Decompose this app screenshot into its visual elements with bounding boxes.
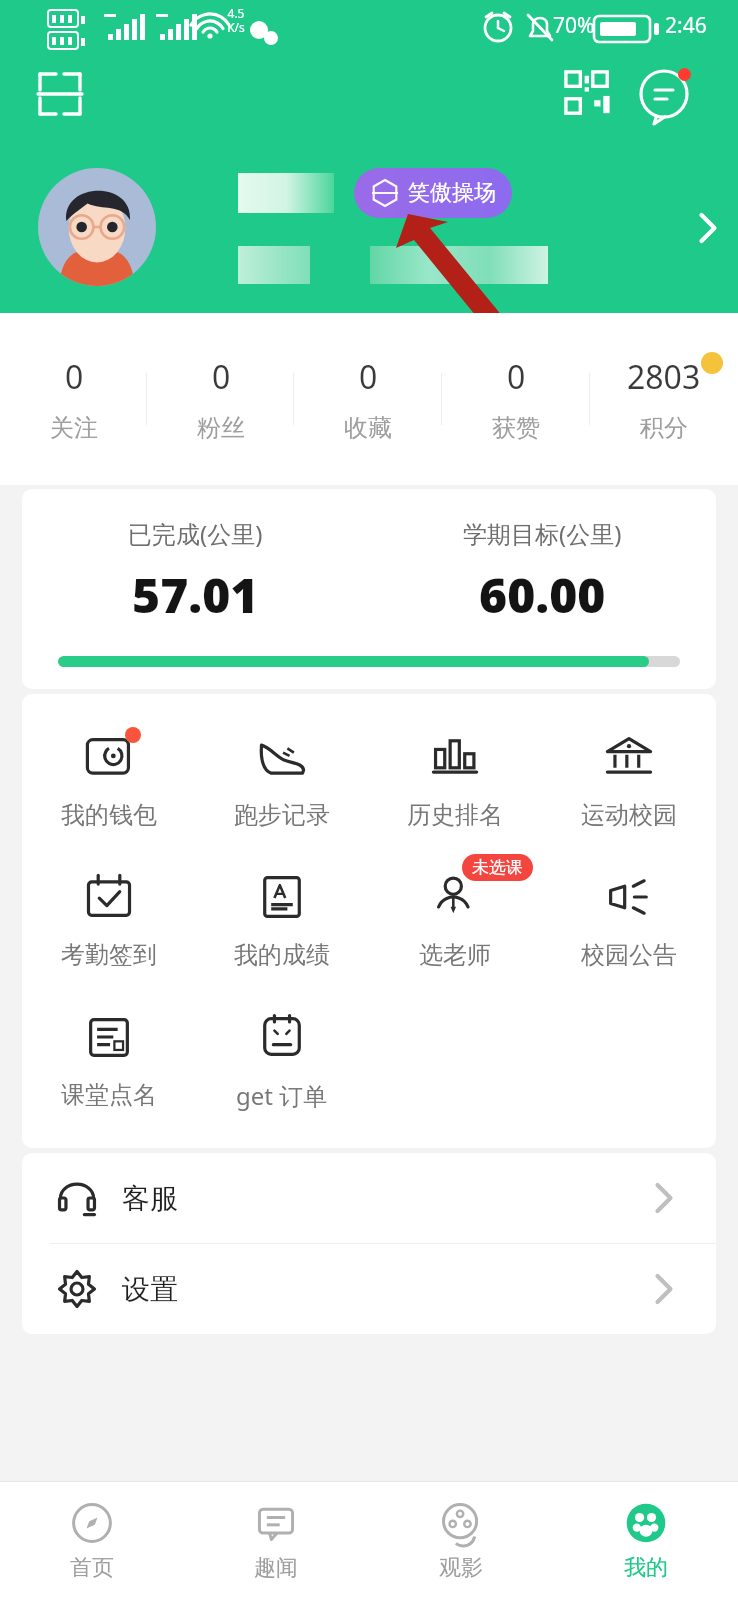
staticText: 57.01: [132, 562, 259, 627]
button[interactable]: 0: [0, 313, 147, 485]
staticText: 0: [507, 355, 526, 399]
staticText: 关注: [50, 413, 98, 443]
button[interactable]: 我的成绩: [195, 850, 368, 990]
button[interactable]: 0: [147, 313, 294, 485]
button[interactable]: get 订单: [195, 990, 368, 1130]
staticText: 观影: [439, 1554, 483, 1582]
staticText: 校园公告: [581, 940, 677, 970]
button[interactable]: Profile detail: [678, 168, 738, 288]
button[interactable]: 我的: [553, 1482, 738, 1600]
staticText: get 订单: [236, 1079, 328, 1112]
button[interactable]: 笑傲操场: [354, 168, 512, 218]
staticText: 0: [65, 355, 84, 399]
staticText: 课堂点名: [61, 1080, 157, 1110]
button[interactable]: 历史排名: [368, 710, 542, 850]
staticText: 笑傲操场: [408, 179, 496, 207]
staticText: 0: [359, 355, 378, 399]
button[interactable]: 0: [442, 313, 590, 485]
staticText: 跑步记录: [234, 800, 330, 830]
staticText: 70%: [553, 11, 595, 40]
button[interactable]: 趣闻: [184, 1482, 368, 1600]
staticText: 2803: [627, 355, 701, 399]
staticText: 2:46: [665, 11, 707, 40]
button[interactable]: 笑傲操场: [0, 168, 738, 298]
staticText: 我的钱包: [61, 800, 157, 830]
staticText: 4.5 K/s: [227, 5, 245, 36]
button[interactable]: 课堂点名: [22, 990, 195, 1130]
staticText: 考勤签到: [61, 940, 157, 970]
button[interactable]: 客服: [22, 1153, 716, 1243]
staticText: 客服: [122, 1181, 178, 1216]
button[interactable]: 观影: [368, 1482, 553, 1600]
staticText: 获赞: [492, 413, 540, 443]
staticText: 设置: [122, 1272, 178, 1307]
staticText: 我的成绩: [234, 940, 330, 970]
staticText: 运动校园: [581, 800, 677, 830]
button[interactable]: 未选课: [368, 850, 542, 990]
staticText: 收藏: [344, 413, 392, 443]
staticText: 趣闻: [254, 1554, 298, 1582]
button[interactable]: 跑步记录: [195, 710, 368, 850]
button[interactable]: 校园公告: [542, 850, 716, 990]
button[interactable]: 我的钱包: [22, 710, 195, 850]
button[interactable]: 考勤签到: [22, 850, 195, 990]
button[interactable]: QR code: [560, 66, 616, 122]
button[interactable]: 0: [294, 313, 442, 485]
staticText: 我的: [624, 1554, 668, 1582]
button[interactable]: 2803: [590, 313, 738, 485]
staticText: 历史排名: [407, 800, 503, 830]
button[interactable]: 已完成(公里): [22, 489, 716, 689]
staticText: 已完成(公里): [128, 517, 263, 550]
staticText: 积分: [640, 413, 688, 443]
staticText: 粉丝: [197, 413, 245, 443]
staticText: 60.00: [479, 562, 606, 627]
button[interactable]: Scan: [30, 64, 90, 124]
staticText: 未选课: [472, 857, 523, 878]
staticText: 选老师: [419, 940, 491, 970]
button[interactable]: 设置: [22, 1244, 716, 1334]
button[interactable]: 运动校园: [542, 710, 716, 850]
staticText: 学期目标(公里): [463, 517, 622, 550]
staticText: 首页: [70, 1554, 114, 1582]
button[interactable]: 首页: [0, 1482, 184, 1600]
button[interactable]: Messages: [634, 64, 694, 124]
staticText: 0: [212, 355, 231, 399]
